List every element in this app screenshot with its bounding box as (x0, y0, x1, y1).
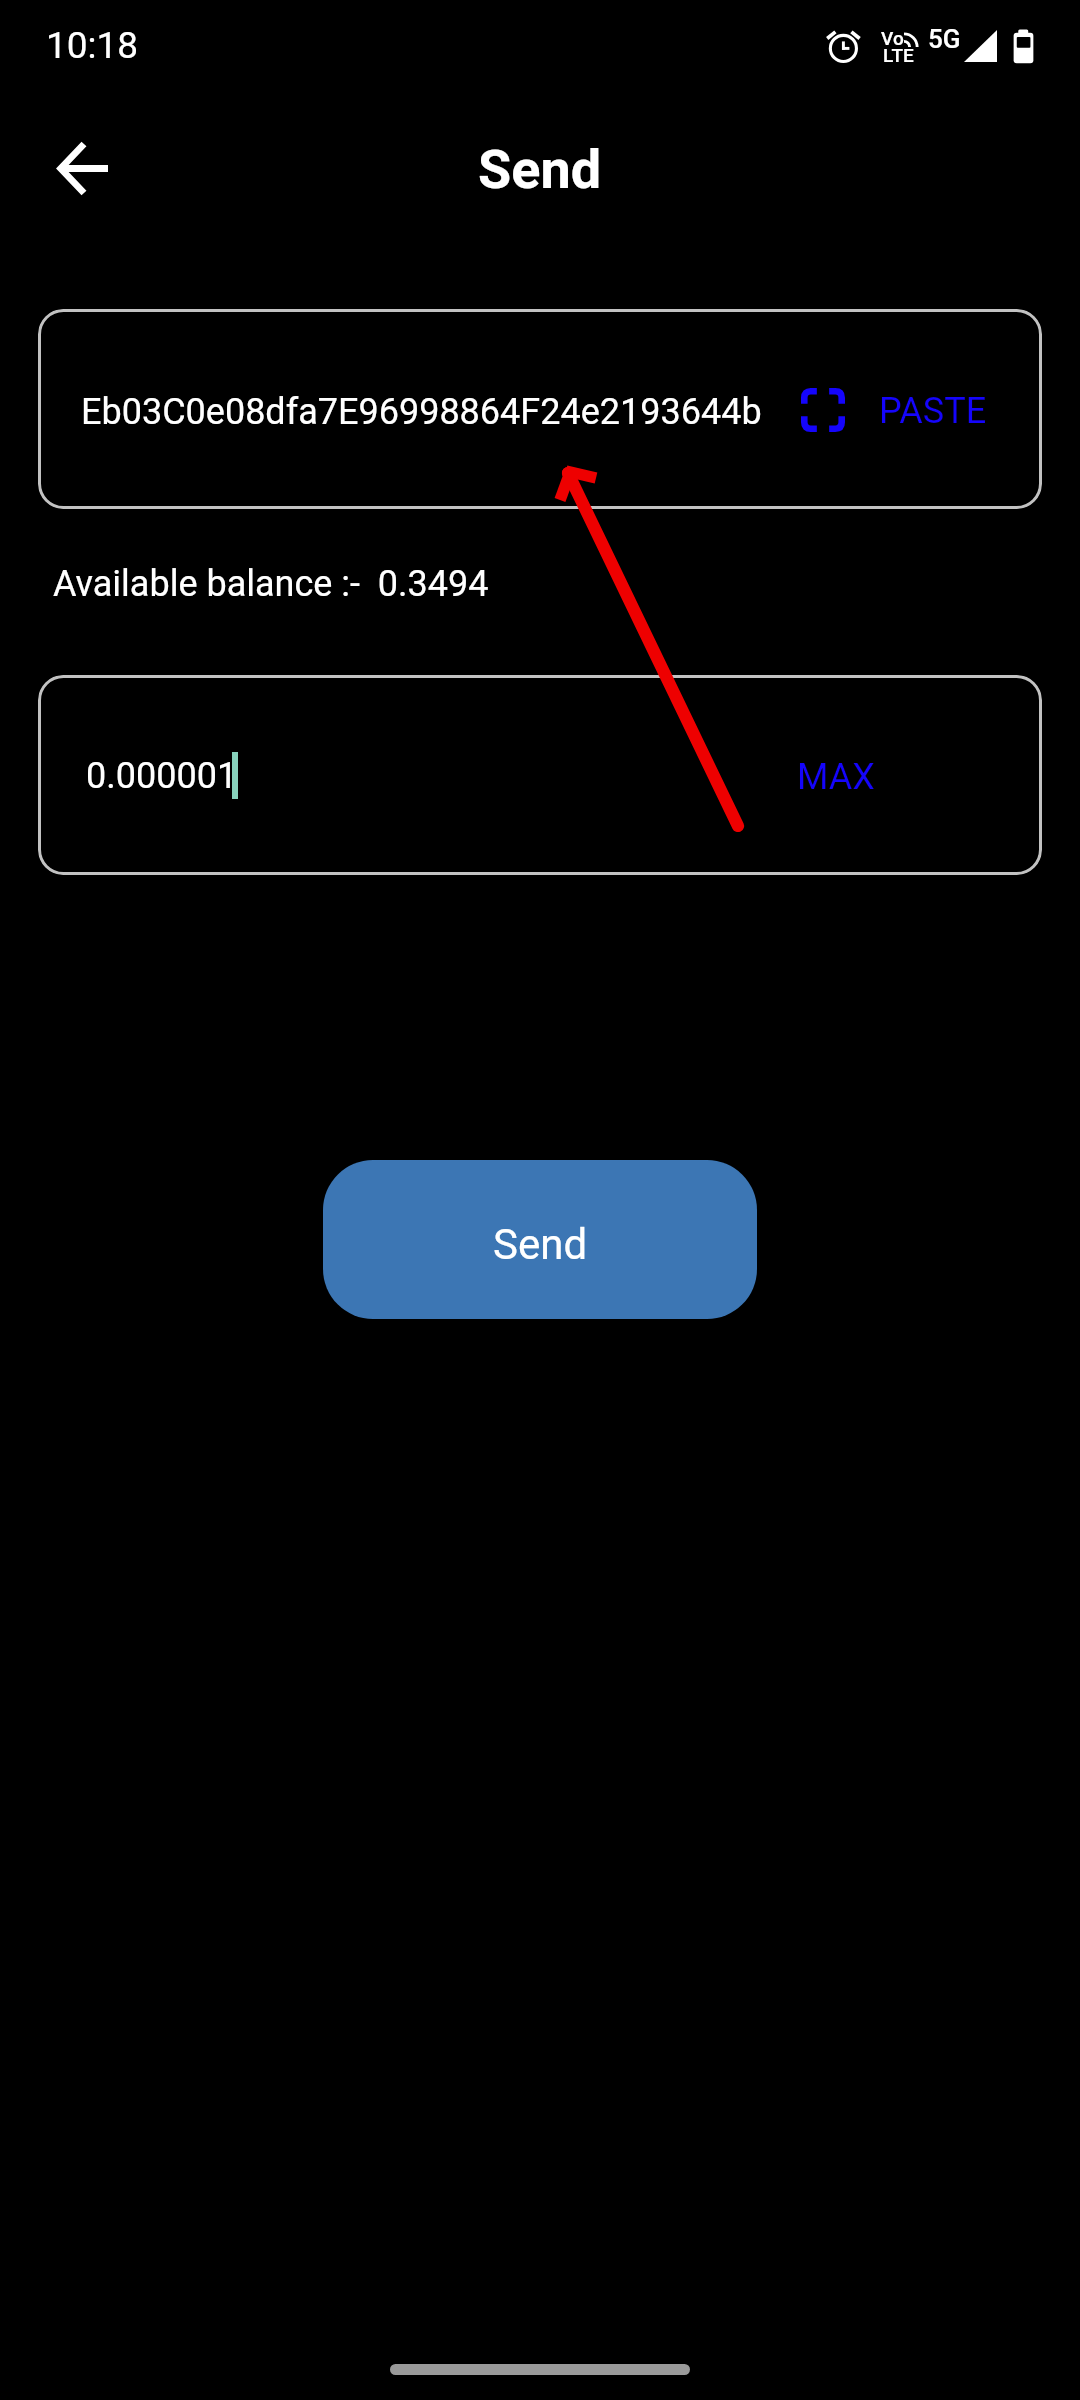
staticText: 10:18 (46, 24, 139, 67)
button[interactable]: PASTE (865, 372, 1001, 450)
staticText: 5G (928, 24, 961, 54)
staticText: PASTE (879, 390, 987, 432)
staticText: Available balance :- 0.3494 (53, 563, 489, 605)
button[interactable]: 0.000001 (38, 675, 1042, 875)
staticText: Send (493, 1220, 588, 1269)
staticText: Send (478, 138, 602, 201)
staticText: Eb03C0e08dfa7E96998864F24e2193644b (81, 391, 762, 433)
button[interactable]: Eb03C0e08dfa7E96998864F24e2193644b (38, 309, 1042, 509)
button[interactable]: Scan QR code (793, 380, 853, 440)
button[interactable]: Send (323, 1160, 757, 1319)
staticText: 0.000001 (86, 755, 238, 797)
button[interactable]: Back (32, 118, 134, 220)
staticText: Vo (881, 27, 904, 49)
button[interactable]: MAX (781, 738, 891, 816)
staticText: MAX (797, 756, 875, 798)
staticText: LTE (883, 44, 914, 66)
